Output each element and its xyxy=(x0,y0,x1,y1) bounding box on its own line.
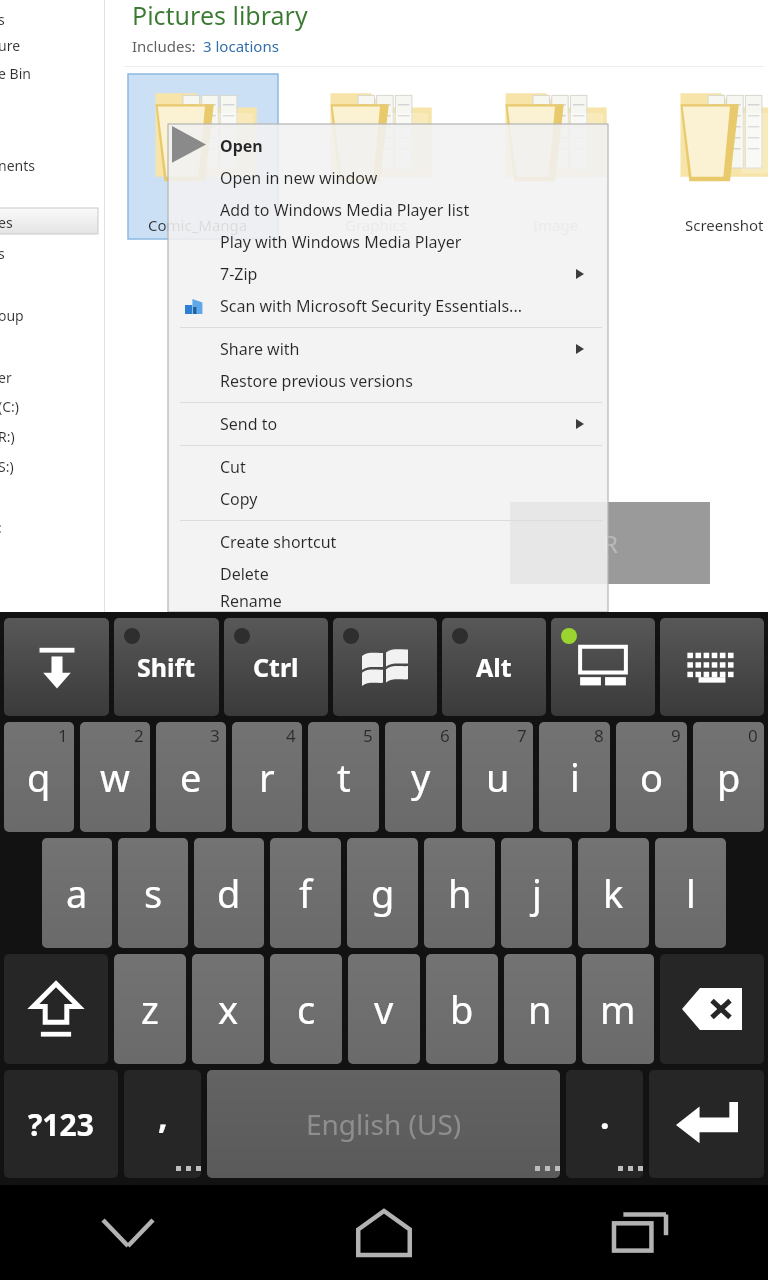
button[interactable]: Share with xyxy=(168,333,608,365)
button[interactable]: z xyxy=(114,954,186,1064)
button[interactable]: : xyxy=(0,518,2,537)
button[interactable]: s xyxy=(118,838,188,948)
button[interactable]: Cut xyxy=(168,451,608,483)
button[interactable]: q xyxy=(4,722,74,832)
button[interactable]: er xyxy=(0,368,12,387)
staticText: es xyxy=(0,213,13,232)
button[interactable]: x xyxy=(192,954,264,1064)
button[interactable]: . xyxy=(566,1070,643,1178)
staticText: 0 xyxy=(748,724,758,747)
button[interactable]: e Bin xyxy=(0,64,31,83)
button[interactable]: Scan with Microsoft Security Essentials.… xyxy=(168,290,608,322)
button[interactable]: n xyxy=(504,954,576,1064)
button[interactable]: English (US) xyxy=(207,1070,560,1178)
staticText: u xyxy=(486,751,510,803)
button[interactable]: Add to Windows Media Player list xyxy=(168,194,608,226)
staticText: i xyxy=(570,751,580,803)
button[interactable]: f xyxy=(270,838,341,948)
staticText: m xyxy=(600,983,636,1035)
button[interactable]: 7-Zip xyxy=(168,258,608,290)
button[interactable]: oup xyxy=(0,306,24,325)
button[interactable]: Send to xyxy=(168,408,608,440)
button[interactable]: S:) xyxy=(0,457,14,476)
staticText: e xyxy=(180,751,202,803)
staticText: p xyxy=(717,751,741,803)
button[interactable]: y xyxy=(385,722,456,832)
staticText: Includes: xyxy=(132,36,196,56)
staticText: v xyxy=(374,983,394,1035)
button[interactable]: k xyxy=(578,838,649,948)
staticText: Open in new window xyxy=(220,167,378,189)
button[interactable]: p xyxy=(693,722,764,832)
button[interactable]: t xyxy=(308,722,379,832)
button[interactable]: Delete xyxy=(168,558,608,590)
button[interactable]: (C:) xyxy=(0,397,19,416)
button[interactable]: nents xyxy=(0,156,35,175)
button[interactable]: o xyxy=(616,722,687,832)
button[interactable]: m xyxy=(582,954,654,1064)
button[interactable]: Play with Windows Media Player xyxy=(168,226,608,258)
button[interactable]: Alt xyxy=(442,618,546,716)
button[interactable]: Open xyxy=(168,130,608,162)
button[interactable]: Restore previous versions xyxy=(168,365,608,397)
staticText: t xyxy=(337,751,351,803)
button[interactable]: Hide keyboard xyxy=(0,1185,256,1280)
button[interactable]: Toggle trackpad xyxy=(551,618,655,716)
button[interactable]: s xyxy=(0,244,5,263)
staticText: R xyxy=(603,527,618,560)
staticText: 4 xyxy=(286,724,296,747)
staticText: 6 xyxy=(440,724,450,747)
button[interactable]: v xyxy=(348,954,420,1064)
staticText: 8 xyxy=(594,724,604,747)
button[interactable]: b xyxy=(426,954,498,1064)
button[interactable]: R:) xyxy=(0,427,15,446)
button[interactable]: i xyxy=(539,722,610,832)
staticText: 2 xyxy=(134,724,144,747)
staticText: o xyxy=(640,751,663,803)
button[interactable]: d xyxy=(194,838,264,948)
staticText: 3 xyxy=(210,724,220,747)
button[interactable]: Shift xyxy=(114,618,219,716)
staticText: Rename xyxy=(220,590,282,612)
button[interactable]: Recent apps xyxy=(512,1185,768,1280)
staticText: a xyxy=(66,867,88,919)
button[interactable]: l xyxy=(655,838,726,948)
button[interactable]: Home xyxy=(256,1185,512,1280)
button[interactable]: c xyxy=(270,954,342,1064)
button[interactable]: Ctrl xyxy=(224,618,328,716)
staticText: 1 xyxy=(58,724,68,747)
button[interactable] xyxy=(128,74,278,239)
staticText: c xyxy=(297,983,316,1035)
staticText: w xyxy=(100,751,130,803)
staticText: , xyxy=(158,1093,168,1139)
button[interactable]: , xyxy=(124,1070,201,1178)
button[interactable]: Shift xyxy=(4,954,108,1064)
staticText: Create shortcut xyxy=(220,531,337,553)
button[interactable]: Copy xyxy=(168,483,608,515)
button[interactable]: Windows key xyxy=(333,618,437,716)
staticText: English (US) xyxy=(306,1105,462,1143)
button[interactable]: w xyxy=(80,722,150,832)
button[interactable]: Open in new window xyxy=(168,162,608,194)
button[interactable]: ure xyxy=(0,36,21,55)
button[interactable]: j xyxy=(501,838,572,948)
button[interactable]: h xyxy=(424,838,495,948)
button[interactable]: Enter xyxy=(649,1070,764,1178)
staticText: Cut xyxy=(220,456,246,478)
button[interactable]: Keyboard layout xyxy=(660,618,764,716)
button[interactable]: Rename xyxy=(168,590,608,612)
button[interactable]: Right click xyxy=(510,502,710,584)
button[interactable]: a xyxy=(42,838,112,948)
button[interactable]: Backspace xyxy=(660,954,764,1064)
button[interactable]: g xyxy=(347,838,418,948)
staticText: Delete xyxy=(220,563,269,585)
button[interactable]: Create shortcut xyxy=(168,526,608,558)
staticText: Scan with Microsoft Security Essentials.… xyxy=(220,295,522,317)
button[interactable]: r xyxy=(232,722,302,832)
button[interactable]: s xyxy=(0,10,5,29)
button[interactable] xyxy=(0,208,98,234)
button[interactable]: e xyxy=(156,722,226,832)
button[interactable]: Tab xyxy=(4,618,109,716)
button[interactable]: u xyxy=(462,722,533,832)
button[interactable]: ?123 xyxy=(4,1070,118,1178)
